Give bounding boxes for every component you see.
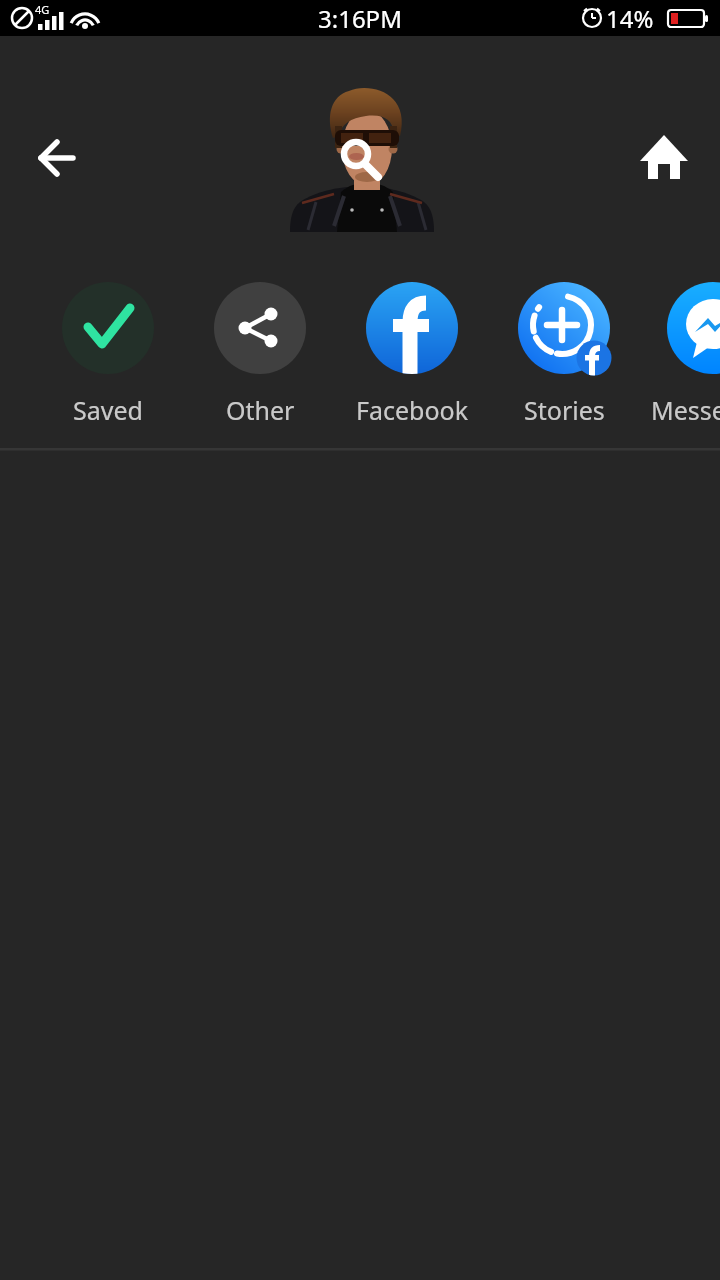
button[interactable] xyxy=(30,132,82,184)
staticText: Messenger xyxy=(651,393,720,427)
staticText: 14% xyxy=(606,2,654,35)
button[interactable] xyxy=(670,282,720,427)
button[interactable] xyxy=(518,282,610,427)
staticText: 3:16PM xyxy=(318,2,402,35)
staticText: 4G xyxy=(35,2,50,17)
button[interactable] xyxy=(366,282,458,427)
staticText: Other xyxy=(226,393,295,427)
button[interactable] xyxy=(290,90,432,232)
staticText: Saved xyxy=(73,393,143,427)
button[interactable] xyxy=(637,132,689,184)
button[interactable] xyxy=(214,282,306,427)
staticText: Facebook xyxy=(356,393,469,427)
staticText: Stories xyxy=(524,393,605,427)
button[interactable] xyxy=(62,282,154,427)
